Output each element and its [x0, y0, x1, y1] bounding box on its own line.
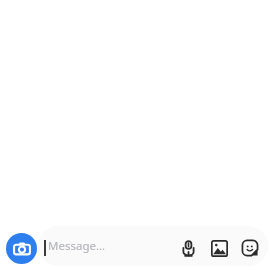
staticText: Message... [48, 238, 106, 254]
button[interactable]: Send photo [207, 236, 231, 260]
button[interactable] [38, 226, 268, 266]
button[interactable]: Voice message [176, 236, 200, 260]
button[interactable]: Open camera [6, 233, 37, 264]
button[interactable]: Send sticker [238, 236, 262, 260]
button[interactable]: Message... [48, 226, 168, 266]
